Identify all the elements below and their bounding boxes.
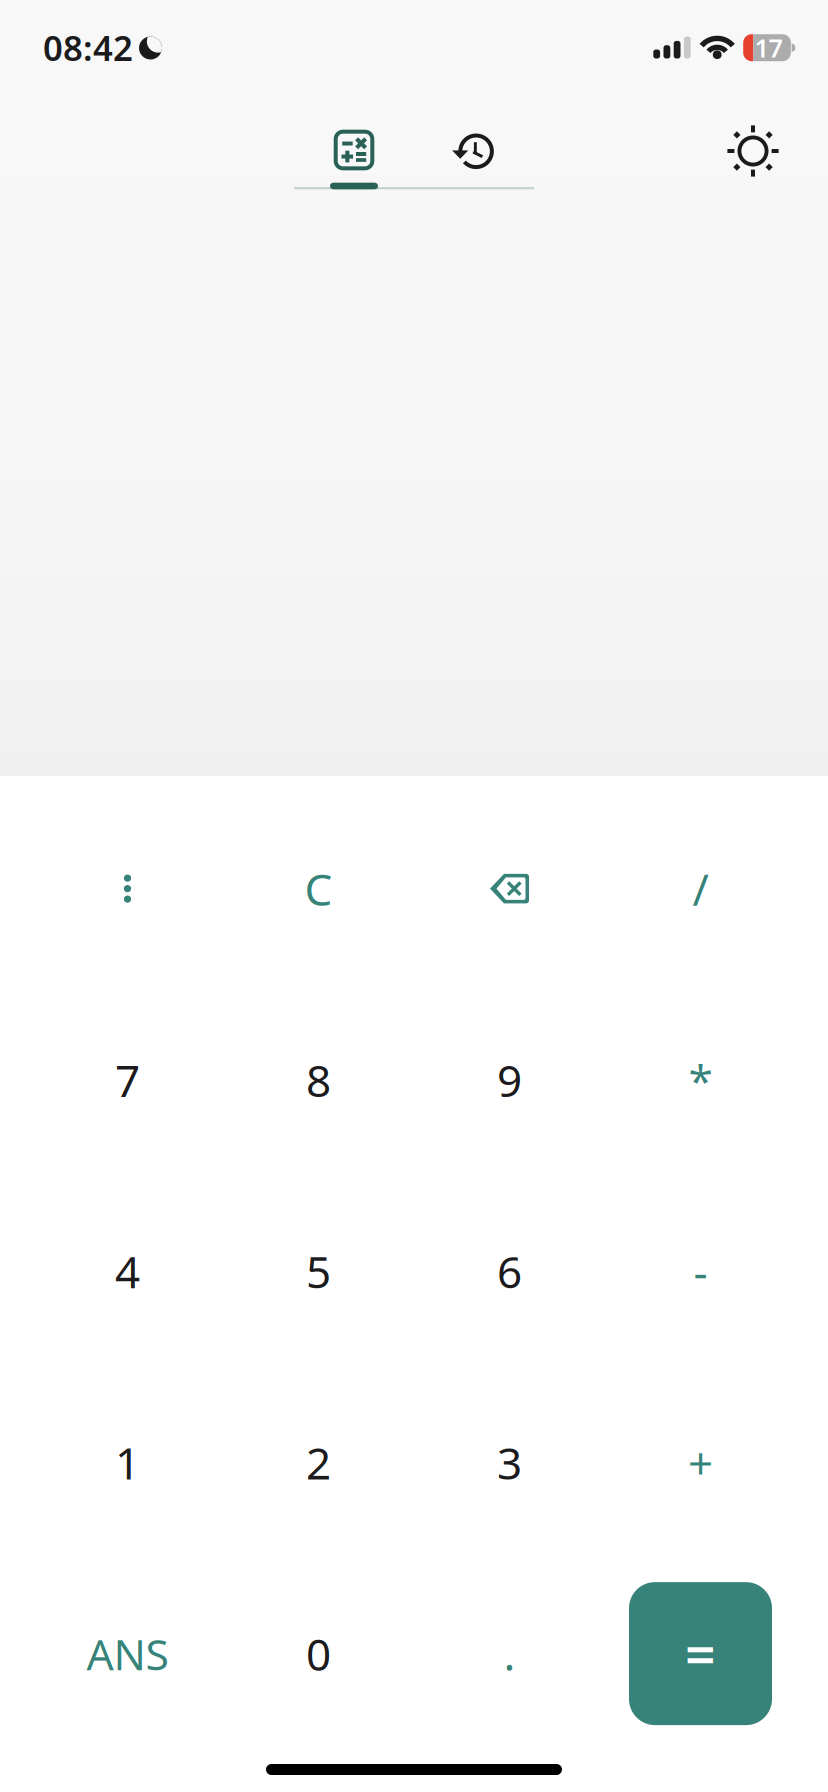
staticText: 8 <box>306 1051 331 1109</box>
staticText: 2 <box>306 1433 331 1492</box>
button[interactable]: 0 <box>223 1558 414 1749</box>
staticText: 3 <box>497 1433 522 1492</box>
staticText: 1 <box>115 1433 140 1492</box>
staticText: 9 <box>497 1051 522 1109</box>
button[interactable]: = <box>605 1558 796 1749</box>
button[interactable]: - <box>605 1175 796 1367</box>
staticText: . <box>503 1624 515 1683</box>
button[interactable]: 8 <box>223 984 414 1175</box>
button[interactable]: / <box>605 793 796 984</box>
button[interactable]: C <box>223 793 414 984</box>
button[interactable]: Backspace <box>414 793 605 984</box>
staticText: * <box>688 1051 712 1109</box>
staticText: 6 <box>497 1242 522 1300</box>
button[interactable]: More <box>32 793 223 984</box>
staticText: ANS <box>86 1625 168 1682</box>
button[interactable]: ANS <box>32 1558 223 1749</box>
button[interactable]: 3 <box>414 1367 605 1558</box>
staticText: 17 <box>755 31 783 64</box>
button[interactable]: Calculator <box>294 118 414 182</box>
button[interactable]: 6 <box>414 1175 605 1367</box>
staticText: = <box>685 1618 716 1689</box>
button[interactable]: + <box>605 1367 796 1558</box>
staticText: C <box>304 859 332 918</box>
staticText: 5 <box>306 1242 331 1300</box>
button[interactable]: . <box>414 1558 605 1749</box>
staticText: + <box>688 1433 713 1492</box>
button[interactable]: 5 <box>223 1175 414 1367</box>
staticText: 7 <box>115 1051 140 1109</box>
button[interactable]: 7 <box>32 984 223 1175</box>
staticText: 08:42 <box>43 24 133 70</box>
button[interactable]: 2 <box>223 1367 414 1558</box>
staticText: 0 <box>306 1624 331 1683</box>
button[interactable]: 9 <box>414 984 605 1175</box>
button[interactable]: History <box>414 118 534 182</box>
staticText: - <box>693 1242 707 1300</box>
button[interactable]: 1 <box>32 1367 223 1558</box>
staticText: 4 <box>115 1242 140 1300</box>
button[interactable]: * <box>605 984 796 1175</box>
button[interactable]: 4 <box>32 1175 223 1367</box>
staticText: / <box>692 859 708 918</box>
button[interactable]: Toggle theme <box>708 106 798 196</box>
